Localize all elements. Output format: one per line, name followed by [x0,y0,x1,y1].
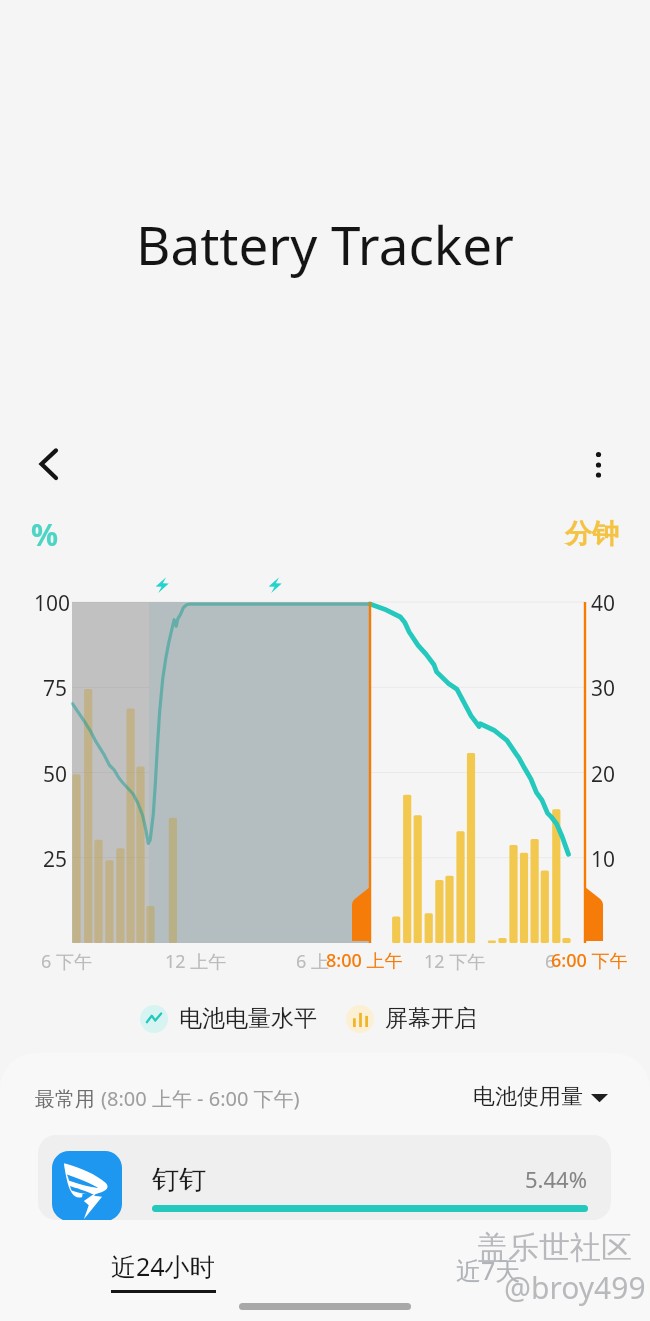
staticText: 钉钉 [152,1163,206,1197]
staticText: 50 [43,760,68,789]
staticText: 12 下午 [424,949,486,974]
button[interactable]: 最常用 [35,1085,300,1112]
staticText: % [31,514,59,555]
staticText: 分钟 [565,517,619,551]
staticText: 6 上 [296,949,329,974]
staticText: 6 下午 [41,949,92,974]
staticText: 75 [43,674,68,703]
staticText: 6:00 下午 [551,948,628,973]
staticText: (8:00 上午 - 6:00 下午) [101,1085,300,1112]
staticText: 近24小时 [111,1249,215,1283]
button[interactable]: More options [575,440,623,488]
staticText: 屏幕开启 [385,1004,477,1033]
button[interactable]: 电池使用量 [473,1083,608,1111]
staticText: 电池电量水平 [179,1004,317,1033]
button[interactable]: Back [24,440,72,488]
staticText: 100 [34,589,71,618]
staticText: 30 [591,674,616,703]
button[interactable]: 钉钉 [38,1135,611,1220]
button[interactable]: 近7天 [456,1253,521,1287]
staticText: 40 [591,589,616,618]
staticText: 5.44% [525,1164,587,1194]
staticText: 最常用 [35,1085,101,1112]
staticText: Battery Tracker [136,208,514,280]
staticText: 12 上午 [165,949,227,974]
staticText: 25 [43,845,68,874]
staticText: 20 [591,760,616,789]
button[interactable]: 屏幕开启 [346,1004,477,1033]
staticText: 盖乐世社区 [477,1228,632,1267]
button[interactable]: 电池电量水平 [140,1004,317,1033]
staticText: @broy499 [504,1267,646,1308]
staticText: 电池使用量 [473,1083,583,1111]
staticText: 6 [545,949,556,974]
staticText: 8:00 上午 [326,948,403,973]
button[interactable]: 近24小时 [111,1249,216,1293]
staticText: 10 [591,845,616,874]
